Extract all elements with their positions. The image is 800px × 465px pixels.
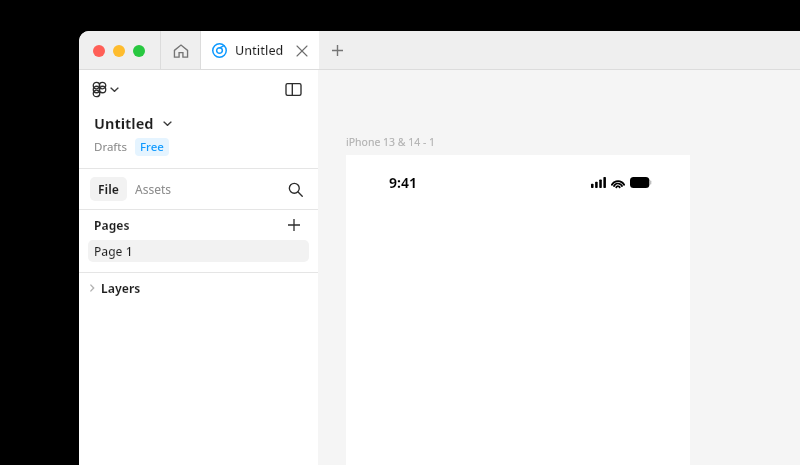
staticText: Untitled: [235, 42, 284, 59]
button[interactable]: iPhone 13 & 14 - 1: [346, 135, 436, 149]
staticText: Layers: [101, 280, 141, 296]
button[interactable]: Close tab: [291, 40, 313, 62]
button[interactable]: Free: [135, 138, 169, 156]
button[interactable]: 9:41: [346, 155, 690, 465]
button[interactable]: Untitled: [94, 113, 171, 133]
staticText: Free: [140, 139, 164, 155]
button[interactable]: Add page: [283, 214, 305, 236]
button[interactable]: New tab: [319, 31, 355, 70]
button[interactable]: Drafts: [94, 139, 127, 155]
button[interactable]: Page 1: [88, 240, 309, 262]
staticText: File: [98, 181, 119, 197]
button[interactable]: Assets: [127, 177, 180, 201]
button[interactable]: Toggle panel: [282, 78, 304, 100]
button[interactable]: Main menu: [93, 83, 118, 96]
button[interactable]: File: [90, 177, 127, 201]
button[interactable]: Zoom window: [133, 45, 145, 57]
button[interactable]: Layers: [85, 273, 318, 303]
staticText: 9:41: [389, 173, 417, 192]
button[interactable]: Search: [283, 177, 307, 201]
staticText: Pages: [94, 217, 130, 233]
button[interactable]: Untitled: [201, 31, 319, 70]
button[interactable]: Close window: [93, 45, 105, 57]
staticText: Page 1: [94, 243, 133, 259]
button[interactable]: Home: [161, 31, 200, 70]
staticText: Assets: [135, 181, 172, 197]
staticText: Untitled: [94, 113, 154, 133]
button[interactable]: Minimize window: [113, 45, 125, 57]
